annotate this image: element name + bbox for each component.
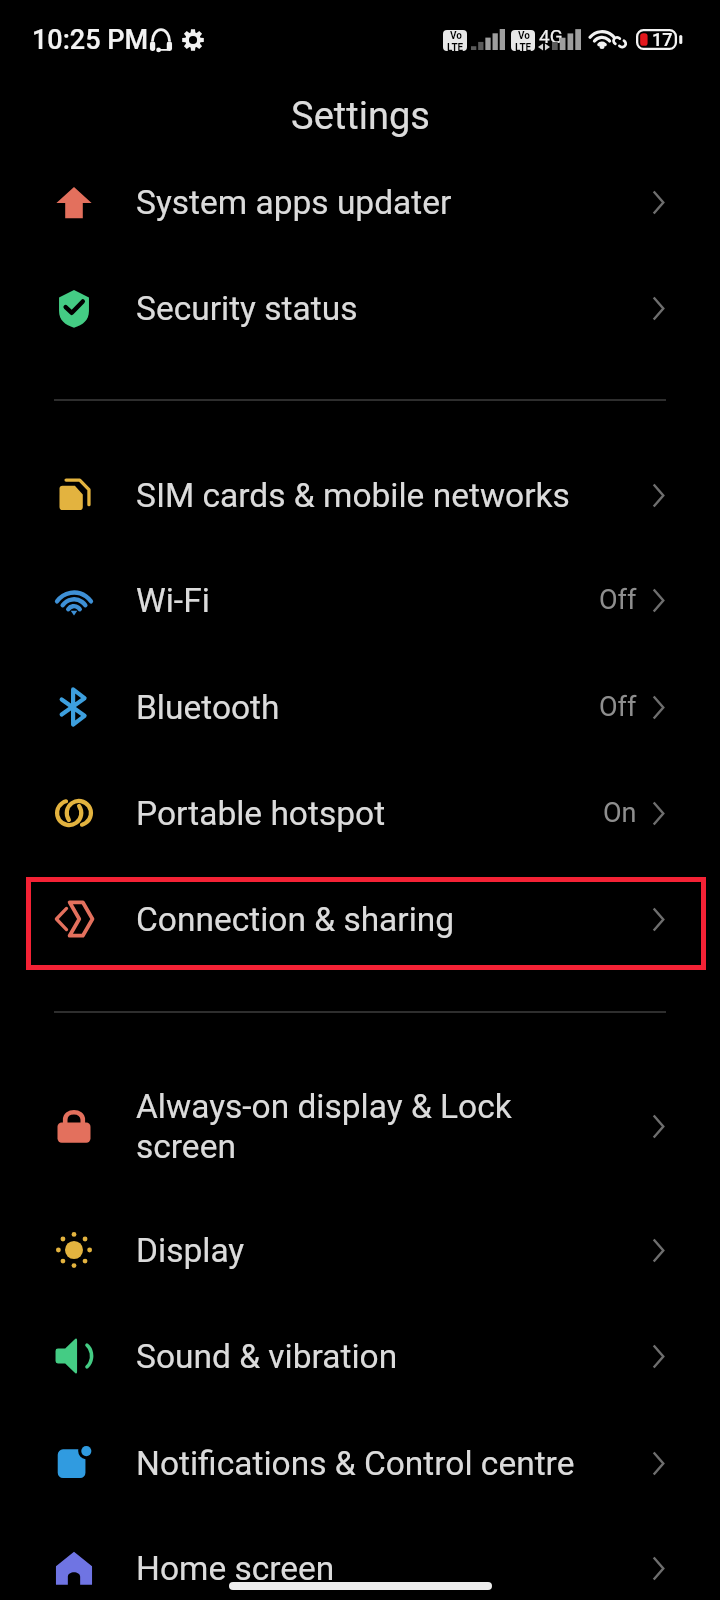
staticText: Wi-Fi	[136, 581, 210, 620]
button[interactable]: Portable hotspot	[0, 760, 720, 866]
staticText: Off	[599, 584, 637, 616]
button[interactable]: Bluetooth	[0, 654, 720, 760]
button[interactable]: Connection & sharing	[0, 866, 720, 972]
button[interactable]: Home screen	[0, 1515, 720, 1600]
staticText: 10:25 PM	[32, 24, 149, 56]
button[interactable]: Display	[0, 1197, 720, 1303]
button[interactable]: Wi-Fi	[0, 547, 720, 653]
staticText: Security status	[136, 289, 358, 328]
staticText: Home screen	[136, 1549, 335, 1588]
staticText: On	[603, 797, 637, 829]
staticText: SIM cards & mobile networks	[136, 476, 570, 515]
staticText: Settings	[291, 94, 430, 139]
staticText: Off	[599, 691, 637, 723]
staticText: 4G	[539, 25, 563, 47]
staticText: Notifications & Control centre	[136, 1444, 575, 1483]
button[interactable]: Security status	[0, 255, 720, 361]
button[interactable]: Always-on display & Lock screen	[0, 1056, 720, 1196]
staticText: LTE	[447, 42, 464, 51]
staticText: Connection & sharing	[136, 900, 455, 939]
staticText: Portable hotspot	[136, 794, 386, 833]
staticText: Bluetooth	[136, 688, 280, 727]
button[interactable]: System apps updater	[0, 149, 720, 255]
button[interactable]: SIM cards & mobile networks	[0, 442, 720, 548]
staticText: Sound & vibration	[136, 1337, 398, 1376]
button[interactable]: Sound & vibration	[0, 1303, 720, 1409]
staticText: LTE	[515, 42, 532, 51]
staticText: Vo	[518, 30, 530, 42]
button[interactable]: Notifications & Control centre	[0, 1410, 720, 1516]
staticText: 17	[652, 29, 673, 50]
staticText: Vo	[450, 30, 462, 42]
staticText: Always-on display & Lock screen	[136, 1087, 536, 1166]
staticText: Display	[136, 1231, 245, 1270]
staticText: System apps updater	[136, 183, 452, 222]
